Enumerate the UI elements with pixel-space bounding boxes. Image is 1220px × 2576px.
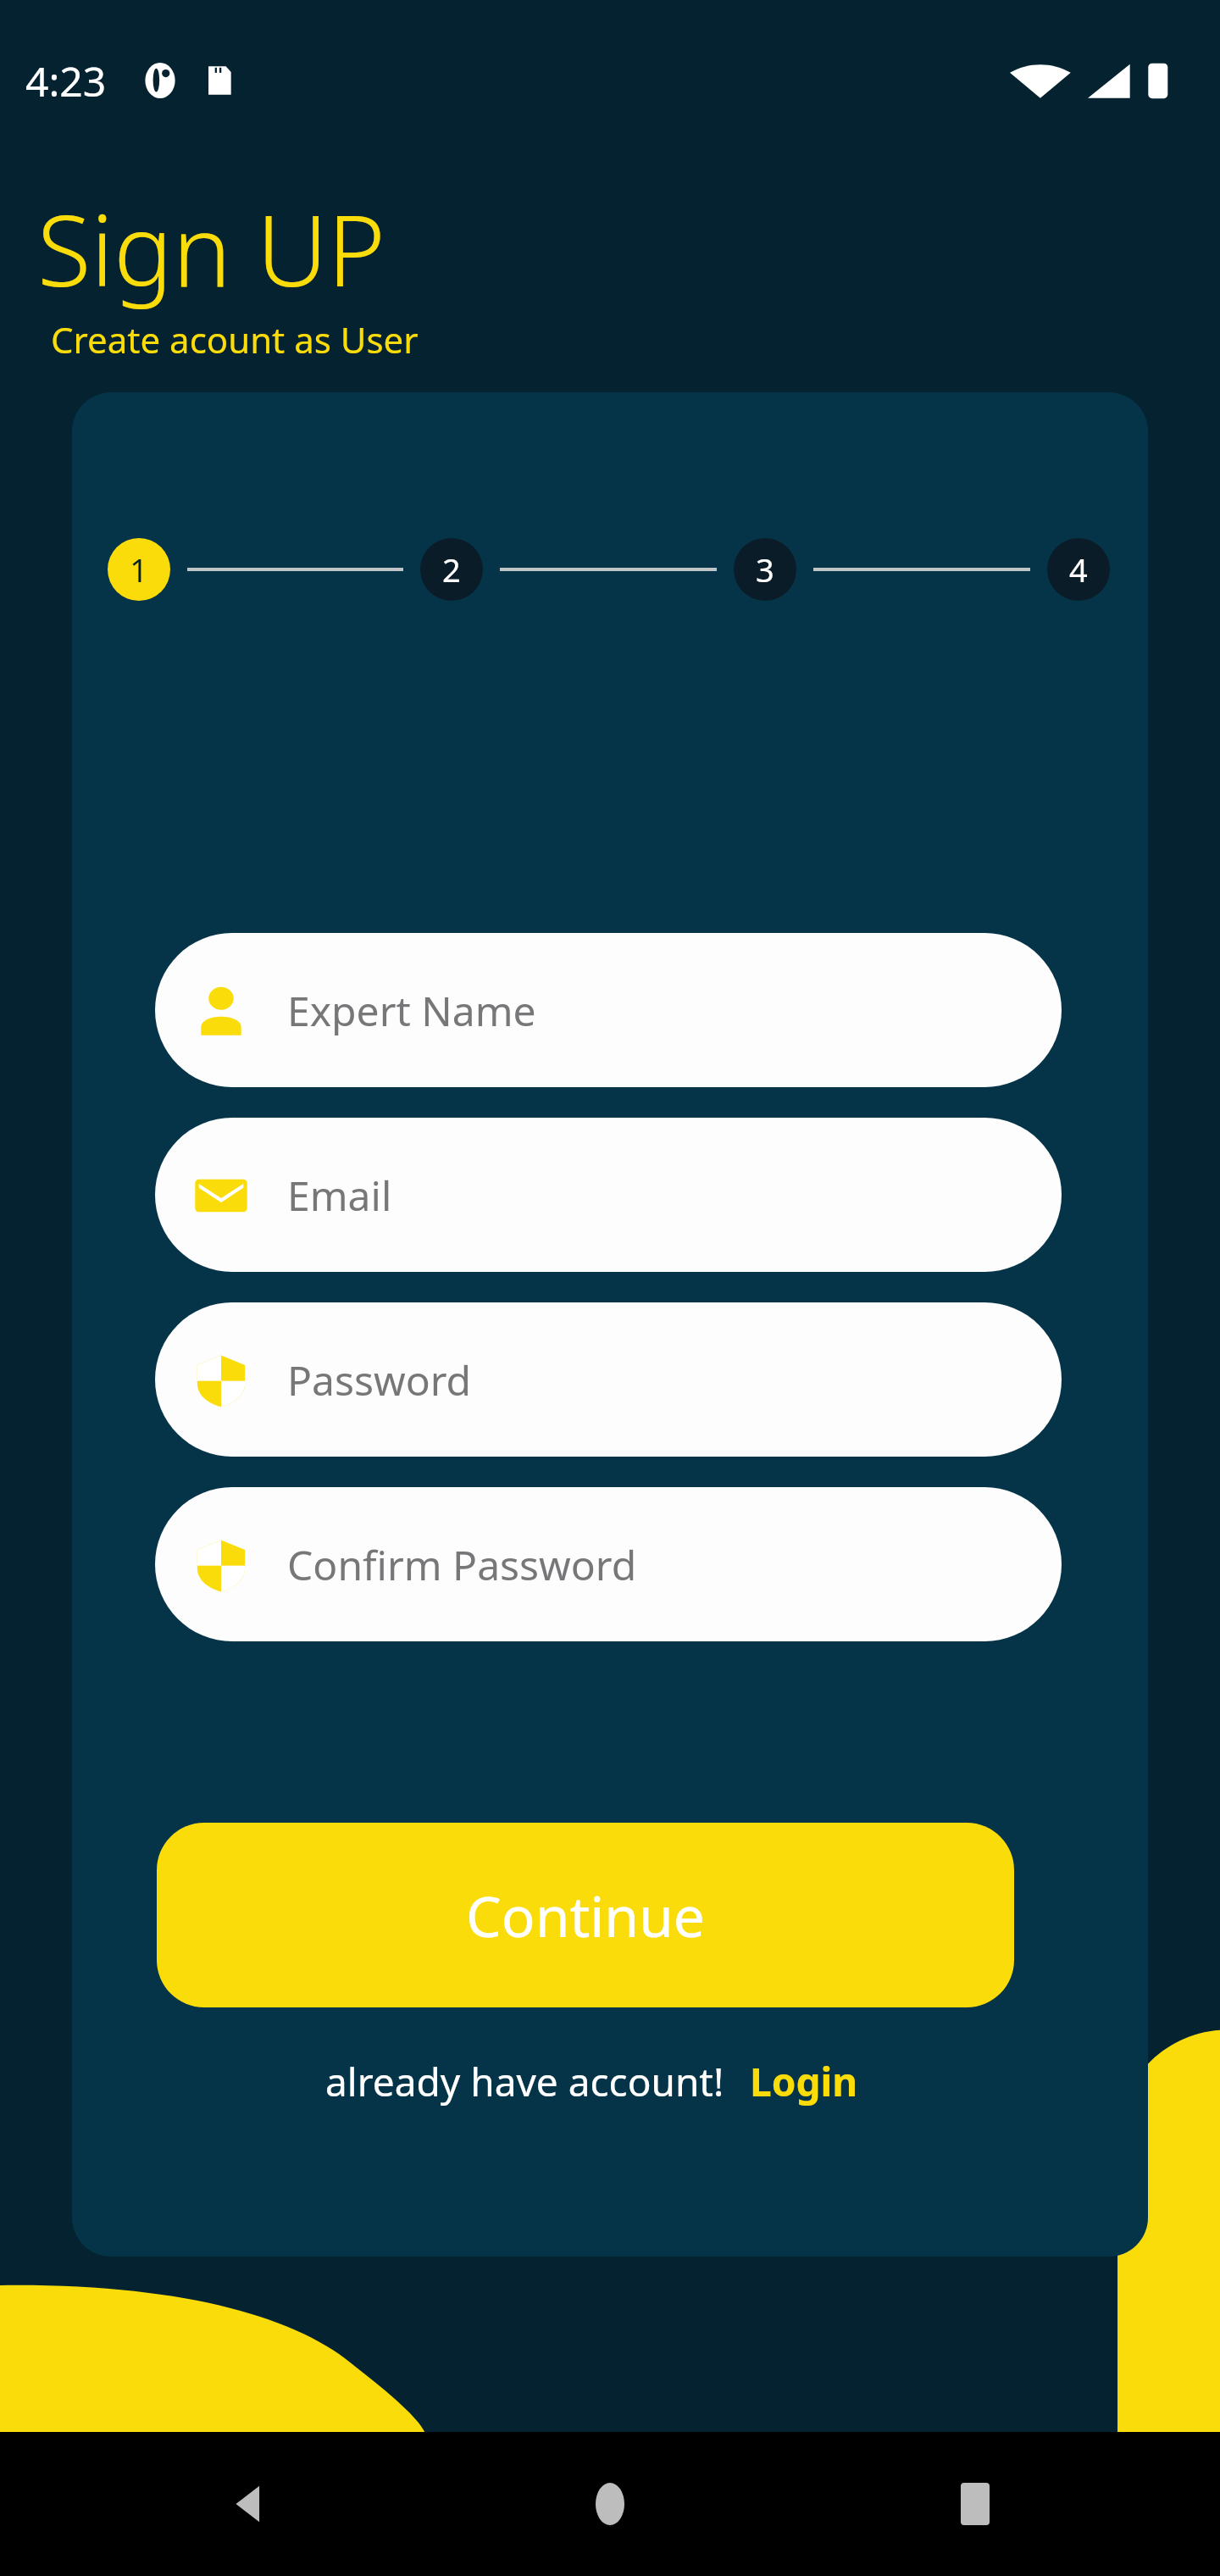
button[interactable]: Recent apps xyxy=(961,2483,990,2525)
staticText: 2 xyxy=(442,547,461,591)
button[interactable]: 1 xyxy=(108,538,170,601)
staticText: Email xyxy=(287,1168,392,1223)
staticText: 3 xyxy=(756,547,774,591)
button[interactable]: Home xyxy=(596,2483,624,2525)
staticText: Login xyxy=(750,2055,858,2108)
button[interactable]: Expert Name xyxy=(155,933,1062,1087)
staticText: Expert Name xyxy=(287,983,536,1038)
staticText: 4:23 xyxy=(25,53,107,108)
button[interactable]: 3 xyxy=(734,538,796,601)
button[interactable]: Email xyxy=(155,1118,1062,1272)
button[interactable]: 2 xyxy=(420,538,483,601)
staticText: already have account! xyxy=(325,2055,724,2108)
staticText: Password xyxy=(287,1352,472,1407)
button[interactable]: Password xyxy=(155,1302,1062,1457)
staticText: Continue xyxy=(466,1877,706,1953)
staticText: 4 xyxy=(1069,547,1088,591)
button[interactable]: Continue xyxy=(157,1823,1014,2007)
button[interactable]: Back xyxy=(230,2484,269,2523)
staticText: Create acount as User xyxy=(51,315,419,364)
button[interactable]: 4 xyxy=(1047,538,1110,601)
button[interactable]: Login xyxy=(750,2055,858,2108)
staticText: Sign UP xyxy=(37,181,385,315)
button[interactable]: Confirm Password xyxy=(155,1487,1062,1641)
staticText: 1 xyxy=(130,547,148,591)
staticText: Confirm Password xyxy=(287,1537,637,1592)
